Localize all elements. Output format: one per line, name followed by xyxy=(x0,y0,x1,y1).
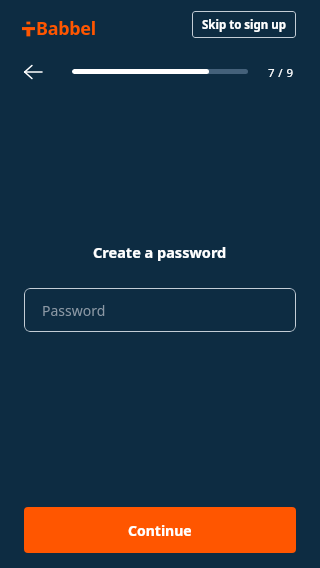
staticText: Create a password xyxy=(93,242,227,262)
button[interactable]: Back xyxy=(19,58,47,86)
staticText: Babbel xyxy=(36,16,96,41)
staticText: Skip to sign up xyxy=(202,17,287,33)
button[interactable]: Continue xyxy=(24,507,296,553)
staticText: Continue xyxy=(128,521,192,540)
staticText: Password xyxy=(42,301,106,320)
staticText: 7 / 9 xyxy=(268,65,294,81)
button[interactable]: Skip to sign up xyxy=(192,11,296,38)
button[interactable]: Password xyxy=(24,288,296,332)
